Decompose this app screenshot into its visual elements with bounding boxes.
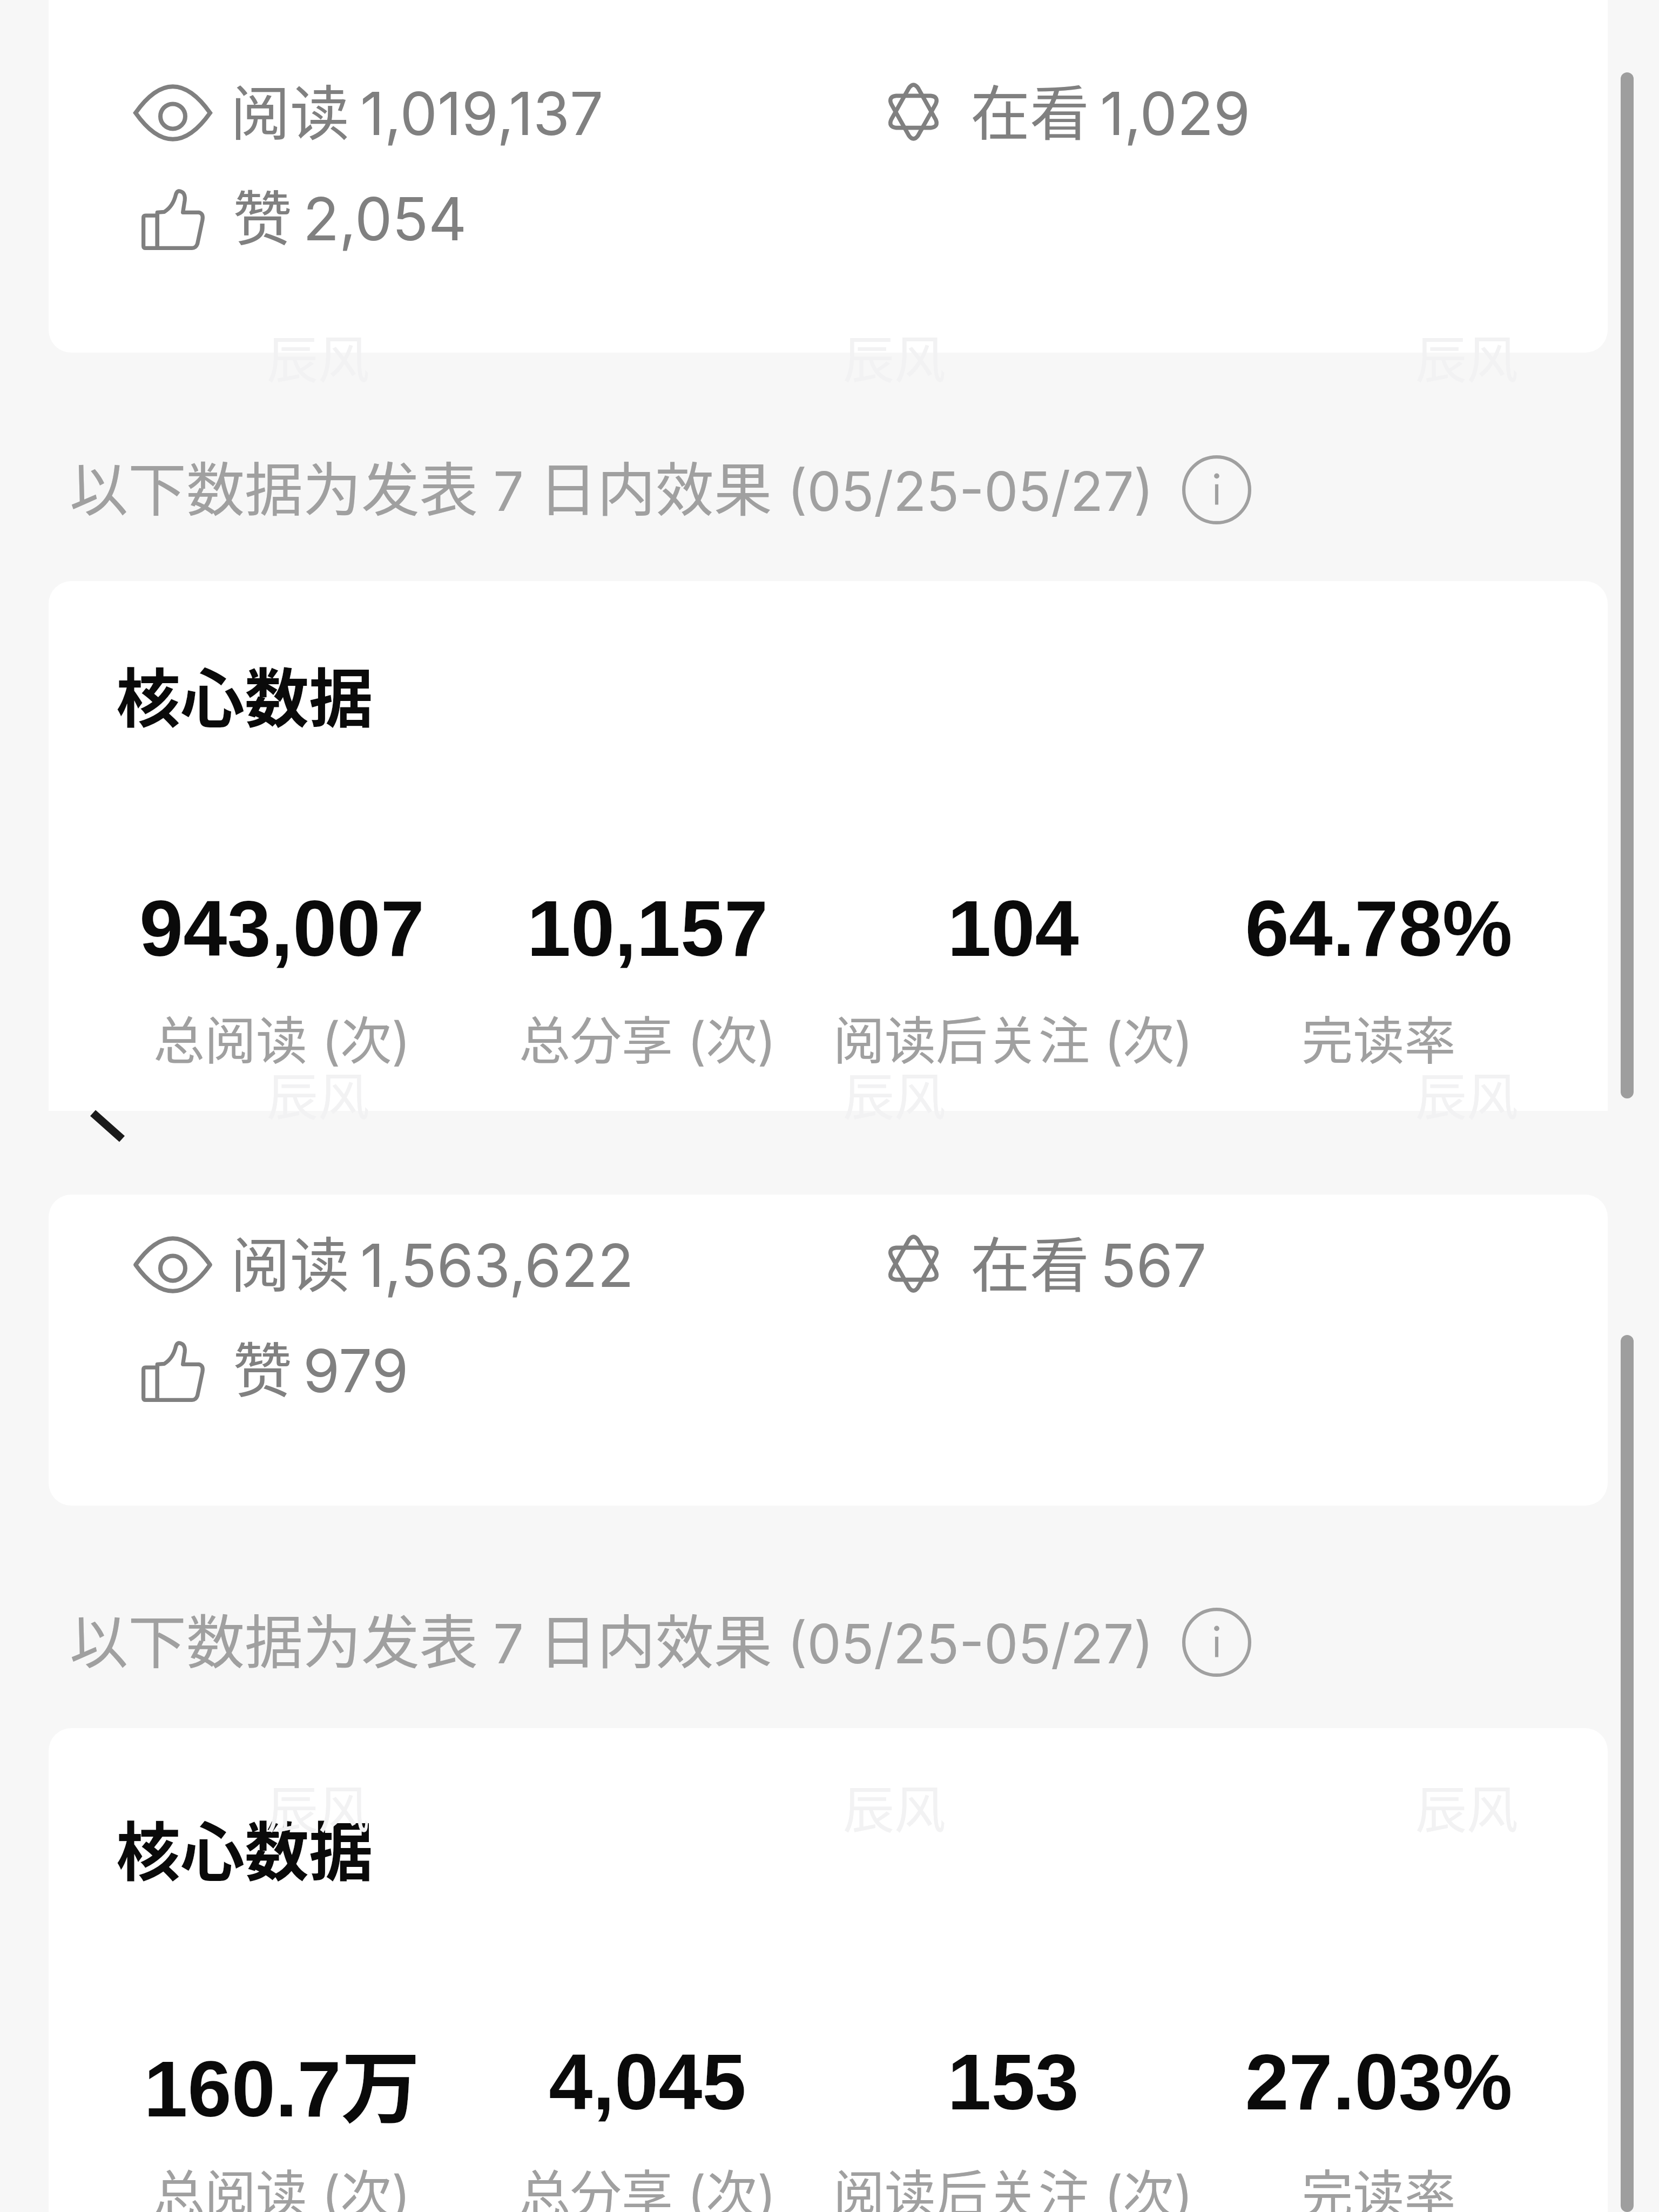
staticText: 辰风 — [843, 1056, 946, 1131]
staticText: 辰风 — [1415, 1056, 1519, 1131]
staticText: 总阅读 (次) — [66, 2154, 498, 2212]
button[interactable]: 阅读 1,019,137 — [49, 0, 1608, 353]
staticText: 153 — [797, 2038, 1229, 2126]
staticText: 27.03% — [1163, 2038, 1595, 2126]
staticText: 完读率 — [1163, 1000, 1595, 1075]
staticText: 总阅读 (次) — [66, 1000, 498, 1075]
staticText: 辰风 — [1415, 1769, 1519, 1844]
staticText: 辰风 — [843, 319, 946, 394]
staticText: 总分享 (次) — [431, 1000, 864, 1075]
staticText: 10,157 — [431, 885, 864, 973]
staticText: 辰风 — [1415, 319, 1519, 394]
staticText: 赞 2,054 — [233, 171, 467, 257]
staticText: 以下数据为发表 7 日内效果 (05/25-05/27) — [70, 443, 1154, 528]
staticText: 核心数据 — [116, 648, 373, 740]
staticText: 阅读后关注 (次) — [797, 2154, 1229, 2212]
staticText: 在看 567 — [970, 1218, 1207, 1304]
staticText: 总分享 (次) — [431, 2154, 864, 2212]
staticText: 104 — [797, 885, 1229, 973]
staticText: 阅读 1,563,622 — [231, 1218, 634, 1304]
staticText: 以下数据为发表 7 日内效果 (05/25-05/27) — [70, 1596, 1154, 1680]
button[interactable]: 阅读 1,563,622 — [49, 1195, 1608, 1506]
staticText: 阅读后关注 (次) — [797, 1000, 1229, 1075]
staticText: 完读率 — [1163, 2154, 1595, 2212]
staticText: 在看 1,029 — [970, 66, 1251, 152]
staticText: 64.78% — [1163, 885, 1595, 973]
staticText: 赞 979 — [233, 1323, 409, 1409]
other: More information — [1182, 1608, 1251, 1677]
other: More information — [1182, 455, 1251, 524]
staticText: 核心数据 — [116, 1801, 373, 1894]
staticText: 阅读 1,019,137 — [231, 66, 604, 152]
staticText: 4,045 — [431, 2038, 864, 2126]
staticText: 辰风 — [267, 1769, 370, 1844]
button[interactable]: 核心数据 — [49, 1728, 1608, 2212]
staticText: 辰风 — [267, 1056, 370, 1131]
staticText: 160.7万 — [66, 2025, 498, 2139]
staticText: 辰风 — [267, 319, 370, 394]
staticText: 辰风 — [843, 1769, 946, 1844]
staticText: 943,007 — [66, 885, 498, 973]
button[interactable]: 核心数据 — [49, 581, 1608, 1111]
